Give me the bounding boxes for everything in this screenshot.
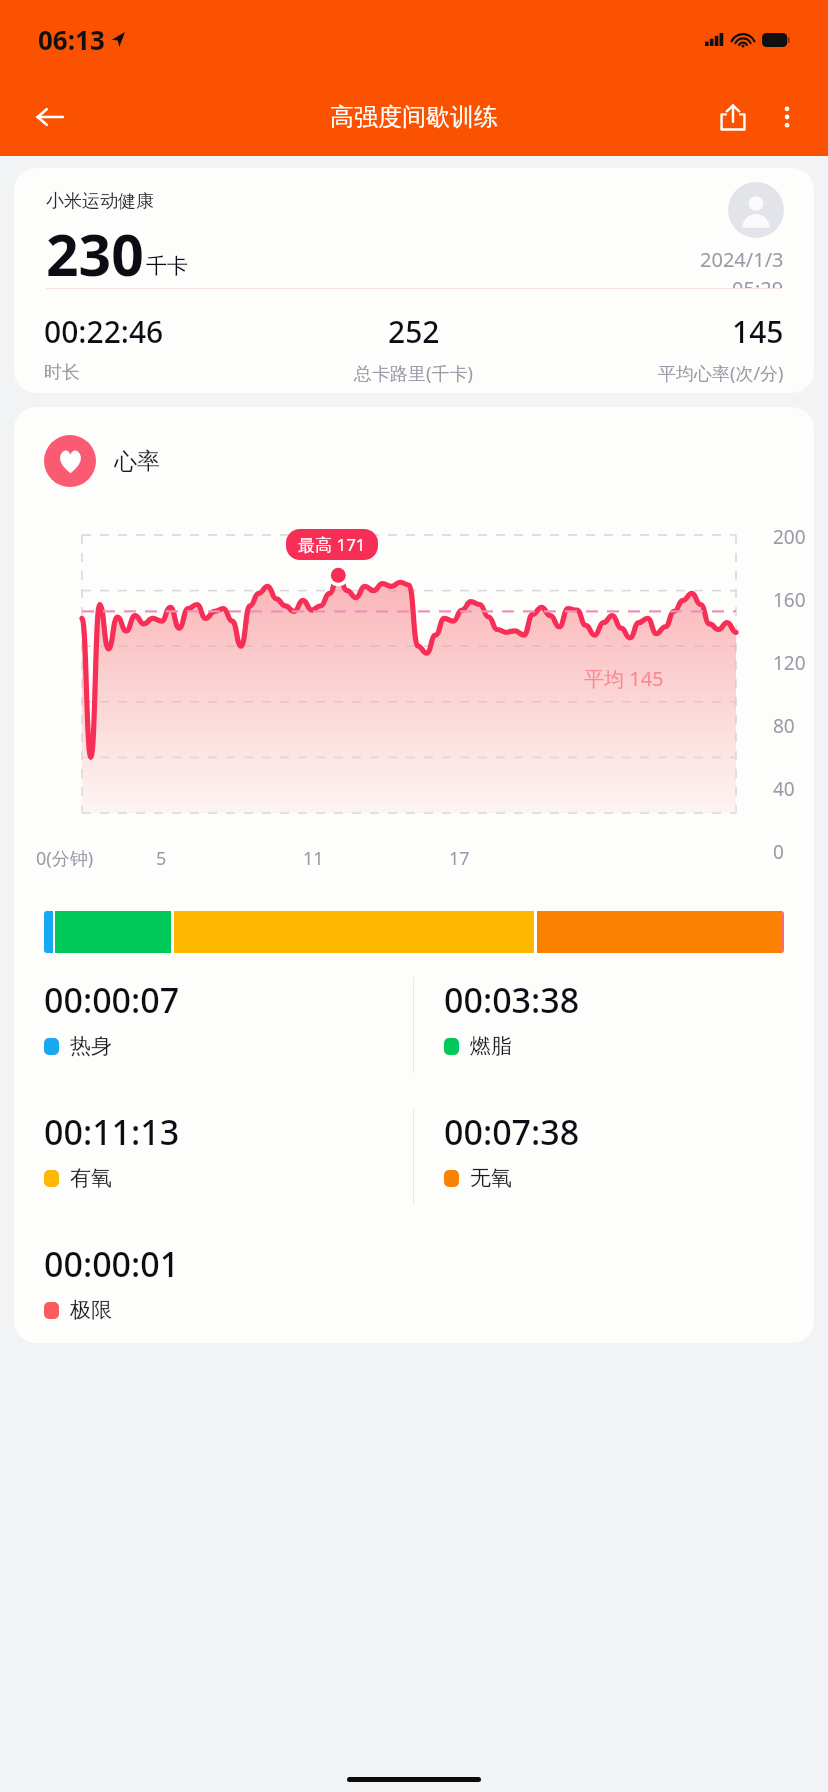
staticText: 平均 145 (584, 665, 664, 692)
staticText: 5 (156, 846, 303, 871)
staticText: 热身 (70, 1033, 112, 1059)
staticText: 230 (46, 215, 144, 288)
staticText: 平均心率(次/分) (658, 361, 784, 386)
button[interactable]: 00:03:38 (444, 977, 580, 1059)
staticText: 2024/1/3 (700, 246, 784, 273)
staticText: 极限 (70, 1297, 112, 1323)
button[interactable]: 00:11:13 (44, 1109, 413, 1191)
staticText: 06:13 (38, 22, 105, 57)
staticText: 120 (773, 650, 806, 676)
staticText: 有氧 (70, 1165, 112, 1191)
button[interactable]: 00:07:38 (444, 1109, 580, 1191)
staticText: 145 (732, 311, 784, 352)
staticText: 00:00:01 (44, 1241, 180, 1287)
button[interactable]: 00:00:01 (44, 1241, 414, 1323)
staticText: 05:29 (732, 275, 784, 288)
staticText: 11 (303, 846, 449, 871)
staticText: 252 (388, 311, 440, 352)
staticText: 小米运动健康 (46, 190, 154, 213)
button[interactable]: 小米运动健康 (14, 168, 814, 393)
staticText: 00:11:13 (44, 1109, 180, 1155)
button[interactable]: 心率 (44, 435, 160, 487)
staticText: 心率 (114, 447, 160, 476)
staticText: 无氧 (470, 1165, 512, 1191)
staticText: 40 (773, 776, 795, 802)
staticText: 00:00:07 (44, 977, 180, 1023)
staticText: 200 (773, 524, 806, 550)
button[interactable]: 00:00:07 (44, 977, 413, 1059)
staticText: 时长 (44, 361, 80, 384)
staticText: 高强度间歇训练 (330, 102, 498, 132)
staticText: 80 (773, 713, 795, 739)
staticText: 17 (449, 846, 549, 871)
button[interactable]: Share (706, 90, 760, 144)
staticText: 00:22:46 (44, 311, 164, 352)
staticText: 160 (773, 587, 806, 613)
staticText: 0 (773, 839, 784, 865)
staticText: 00:03:38 (444, 977, 580, 1023)
staticText: 0(分钟) (36, 846, 156, 871)
staticText: 总卡路里(千卡) (354, 361, 473, 386)
button[interactable]: Back (22, 89, 78, 145)
staticText: 最高 171 (298, 533, 366, 556)
button[interactable]: More options (760, 90, 814, 144)
staticText: 燃脂 (470, 1033, 512, 1059)
staticText: 00:07:38 (444, 1109, 580, 1155)
staticText: 千卡 (146, 253, 188, 279)
